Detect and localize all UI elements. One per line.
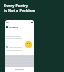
button[interactable]: Soapbox <box>6 25 33 29</box>
staticText: Lorem ipsum dolor <box>6 35 22 37</box>
staticText: sit amet consectetur <box>6 37 23 39</box>
button[interactable]: Emoji reaction <box>25 41 32 48</box>
staticText: Soapbox <box>9 26 18 29</box>
staticText: Every Poetry <box>4 3 28 8</box>
staticText: is Not a Problem <box>4 8 36 13</box>
staticText: Sed do eiusmod <box>9 46 22 48</box>
staticText: 9:41 <box>6 21 10 23</box>
staticText: tempor incididunt ut <box>6 49 23 51</box>
